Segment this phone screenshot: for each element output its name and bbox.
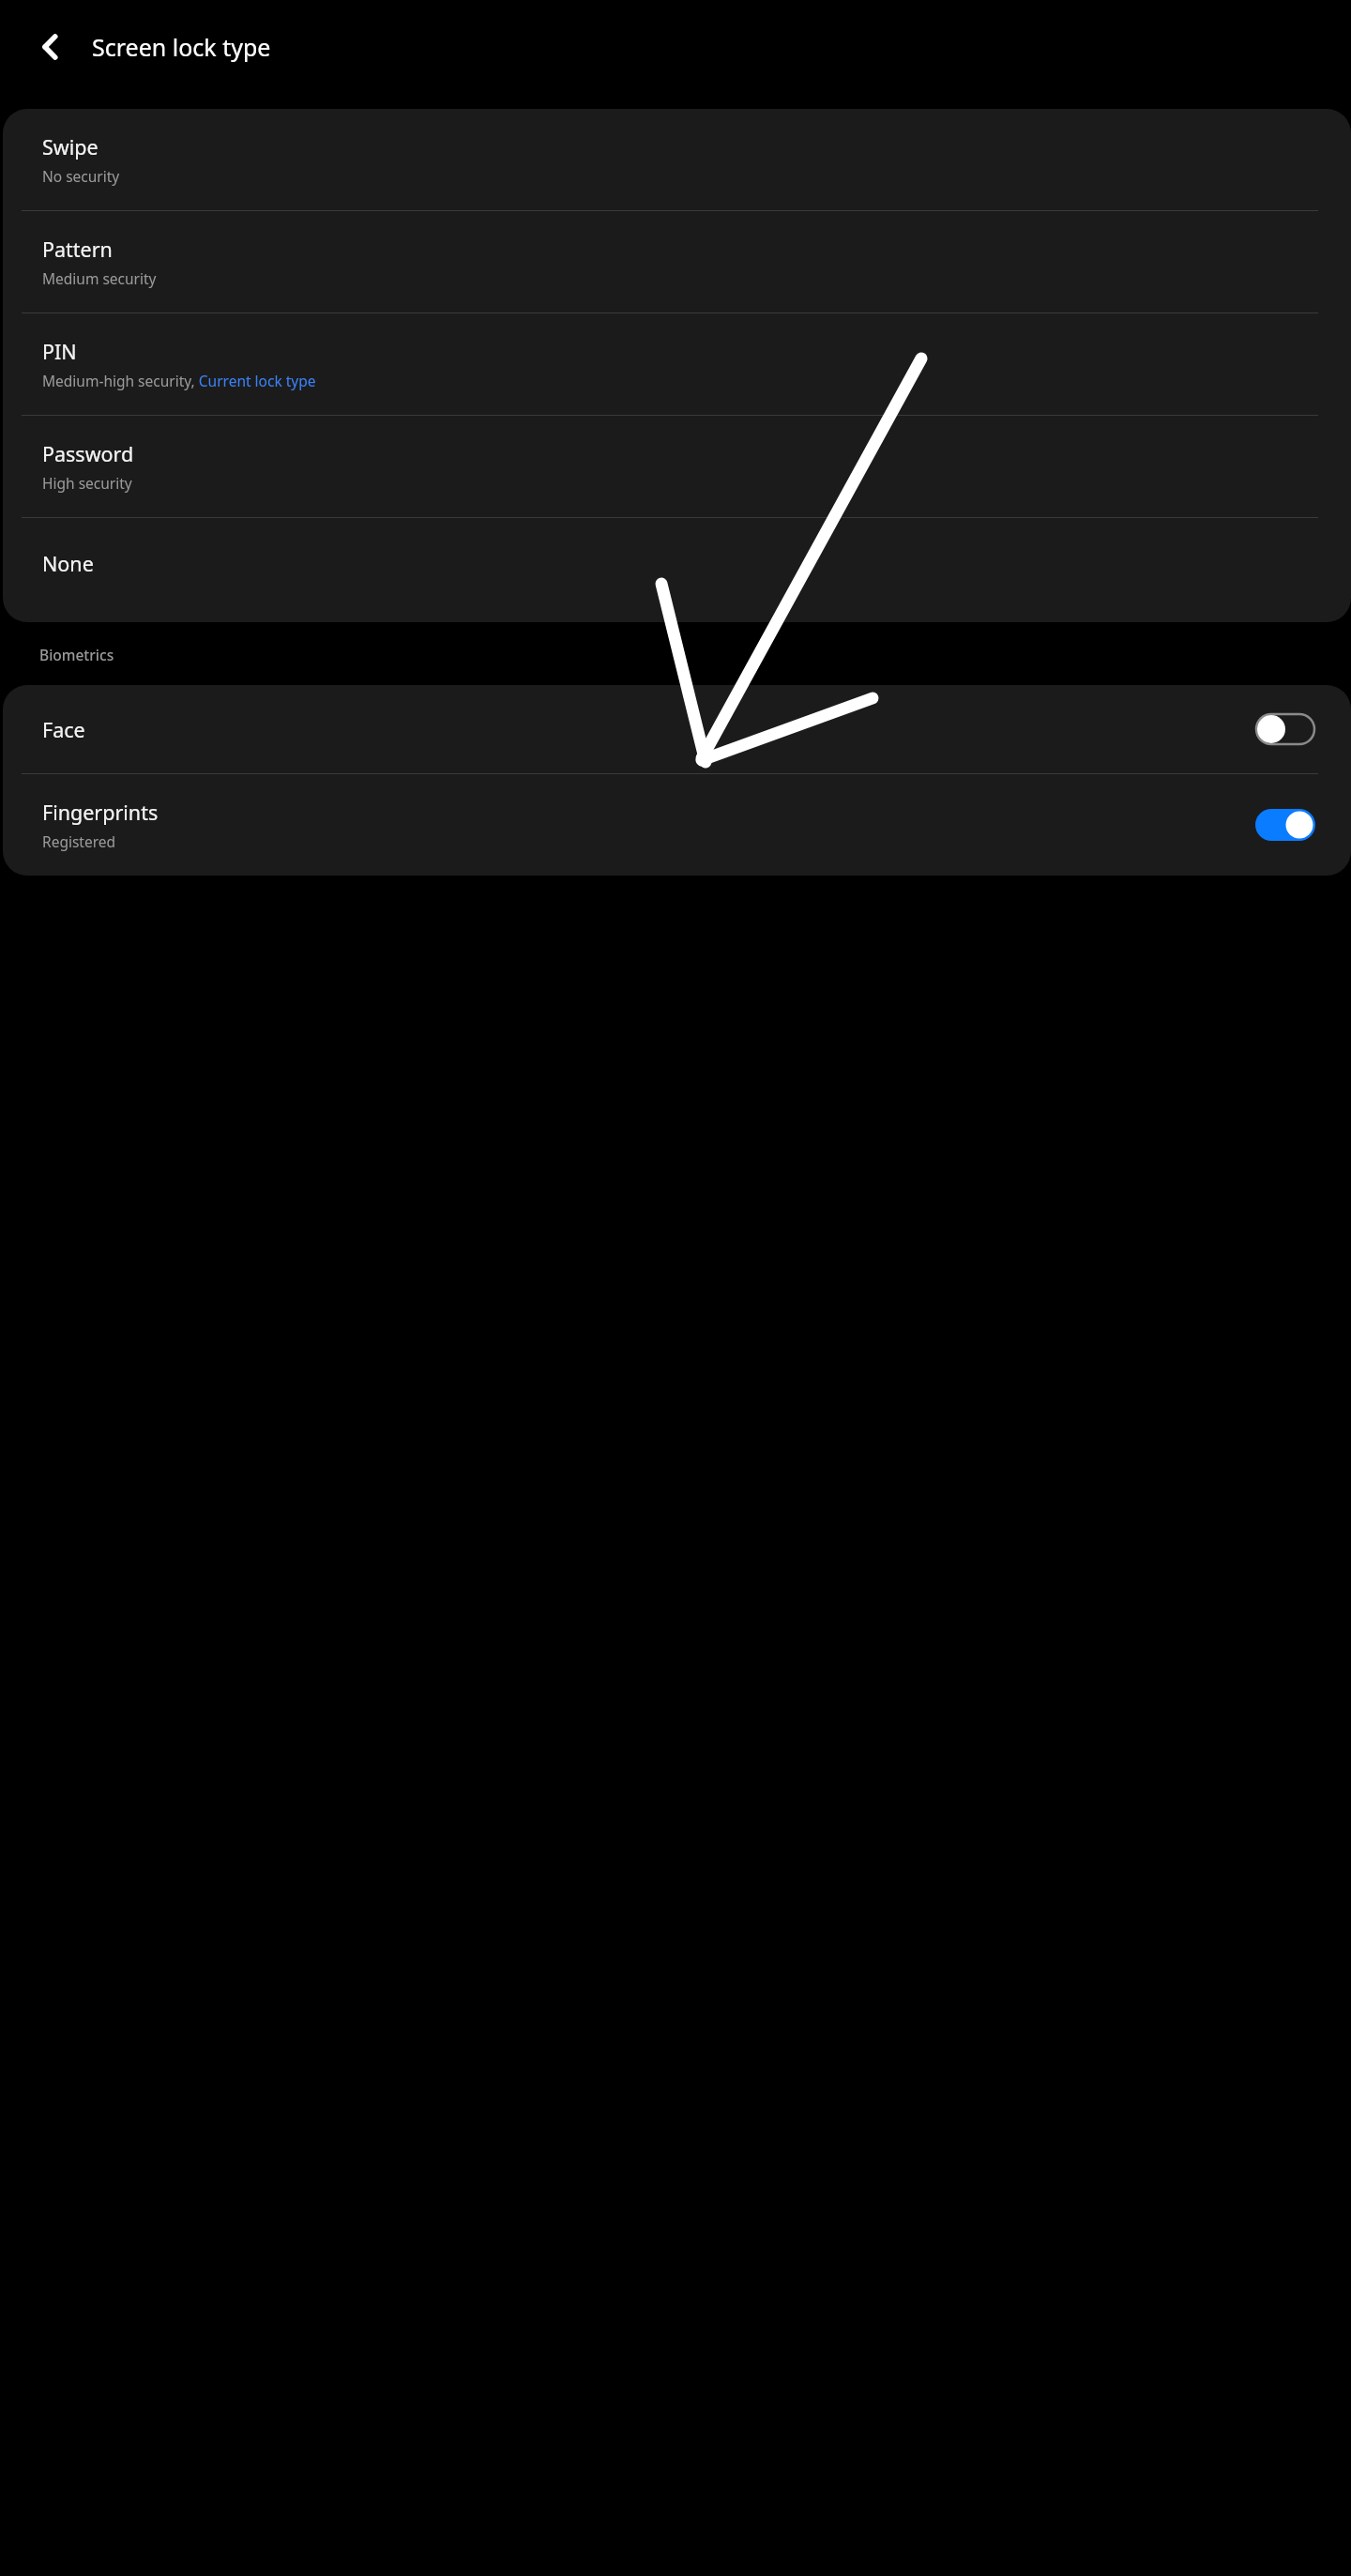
button[interactable]: None [3, 518, 1351, 622]
button[interactable]: Back [21, 17, 81, 77]
staticText: Medium security [42, 268, 157, 288]
staticText: Biometrics [39, 645, 114, 664]
staticText: No security [42, 166, 120, 186]
staticText: Fingerprints [42, 799, 159, 826]
button[interactable]: Fingerprints [3, 774, 1351, 876]
button[interactable]: Face unlock toggle [1255, 713, 1315, 745]
staticText: Screen lock type [92, 31, 271, 63]
staticText: PIN [42, 338, 77, 365]
staticText: None [42, 550, 94, 577]
staticText: Pattern [42, 236, 113, 263]
staticText: Registered [42, 831, 116, 851]
button[interactable]: Swipe [3, 109, 1351, 210]
button[interactable]: Fingerprints toggle [1255, 809, 1315, 841]
staticText: Password [42, 440, 134, 467]
staticText: Face [42, 716, 85, 743]
button[interactable]: Pattern [3, 211, 1351, 312]
button[interactable]: Password [3, 416, 1351, 517]
staticText: Swipe [42, 133, 99, 160]
staticText: Medium-high security, Current lock type [42, 371, 316, 390]
staticText: High security [42, 473, 132, 493]
button[interactable]: PIN [3, 313, 1351, 415]
button[interactable]: Face [3, 685, 1351, 773]
